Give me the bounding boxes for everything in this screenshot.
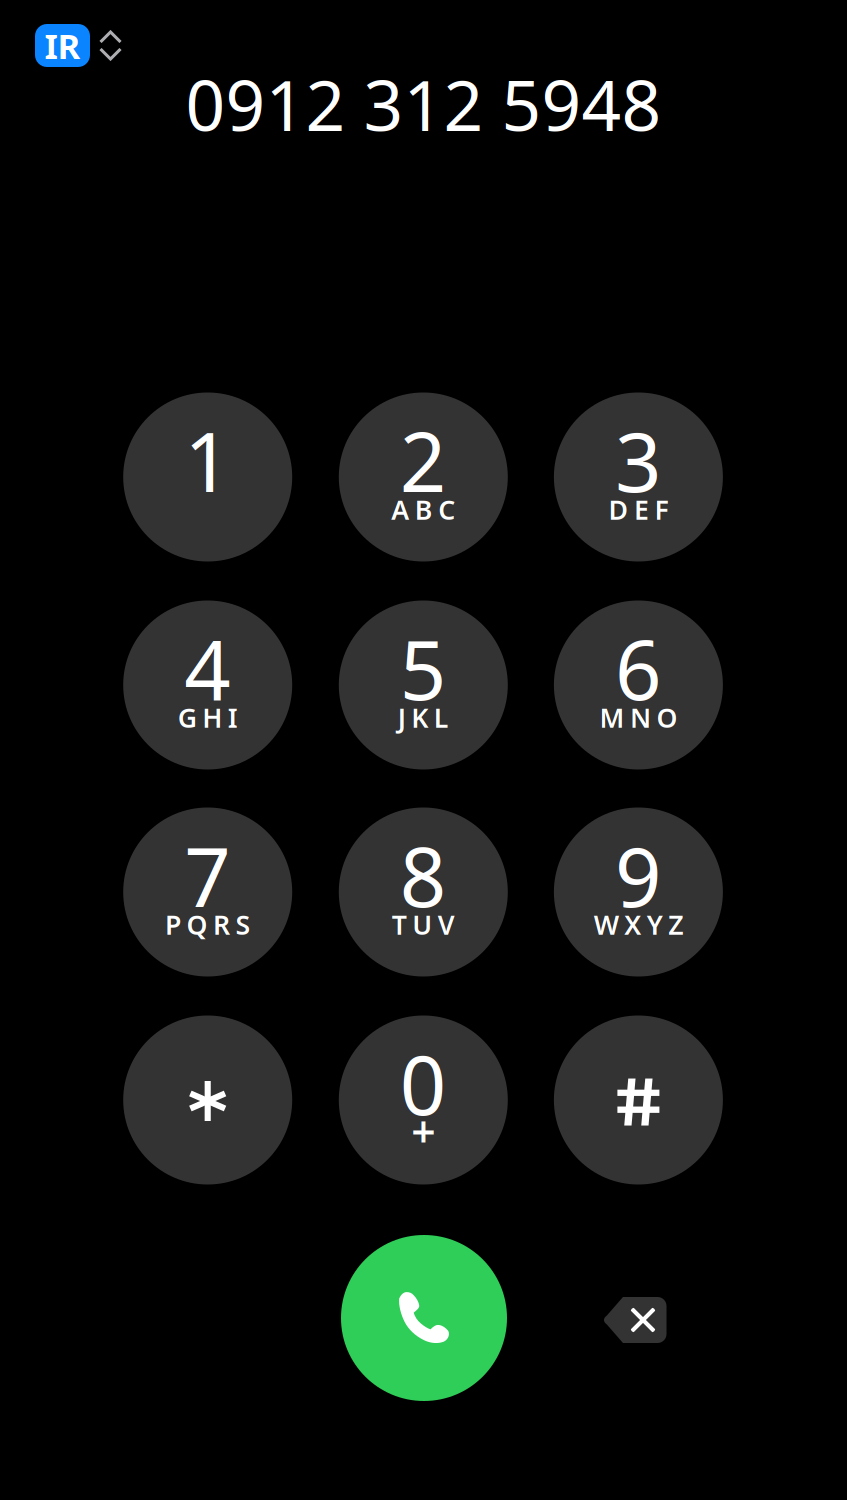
button[interactable]: 6 xyxy=(554,600,723,769)
staticText: 2 xyxy=(400,406,447,514)
staticText: WXYZ xyxy=(594,907,683,942)
button[interactable]: 1 xyxy=(123,392,292,561)
staticText: 5 xyxy=(400,614,447,722)
staticText: MNO xyxy=(599,700,677,735)
button[interactable]: 7 xyxy=(123,807,292,976)
button[interactable]: 9 xyxy=(554,807,723,976)
button[interactable]: Pound xyxy=(554,1015,723,1184)
staticText: + xyxy=(411,1103,435,1159)
staticText: 6 xyxy=(615,614,662,722)
button[interactable]: 4 xyxy=(123,600,292,769)
button[interactable]: SIM carrier IR xyxy=(36,24,121,67)
button[interactable]: 0 xyxy=(339,1015,508,1184)
staticText: 9 xyxy=(615,821,662,929)
button[interactable]: Call xyxy=(341,1235,507,1401)
button[interactable]: 8 xyxy=(339,807,508,976)
button[interactable]: 2 xyxy=(339,392,508,561)
staticText: IR xyxy=(44,22,80,68)
button[interactable]: 3 xyxy=(554,392,723,561)
staticText: 8 xyxy=(400,821,447,929)
button[interactable]: Delete xyxy=(585,1270,685,1370)
staticText: GHI xyxy=(178,700,238,735)
staticText: 7 xyxy=(184,821,231,929)
button[interactable]: Star xyxy=(123,1015,292,1184)
staticText: DEF xyxy=(608,492,668,527)
staticText: 0 xyxy=(400,1029,447,1137)
staticText: JKL xyxy=(398,700,449,735)
staticText: 0912 312 5948 xyxy=(185,58,661,150)
staticText: 3 xyxy=(615,406,662,514)
staticText: 4 xyxy=(184,614,231,722)
staticText: 1 xyxy=(184,406,231,514)
staticText: ABC xyxy=(391,492,455,527)
button[interactable]: 5 xyxy=(339,600,508,769)
staticText: TUV xyxy=(392,907,455,942)
staticText: PQRS xyxy=(165,907,250,942)
